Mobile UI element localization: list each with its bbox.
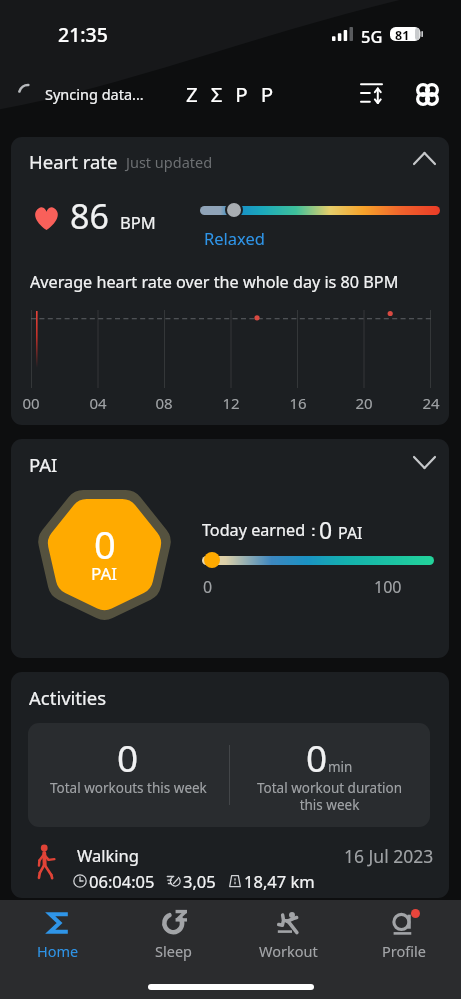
staticText: 0: [94, 518, 116, 570]
staticText: Total workouts this week: [50, 779, 207, 797]
staticText: Today earned：: [202, 519, 322, 541]
staticText: 04: [83, 393, 113, 413]
staticText: Relaxed: [204, 227, 265, 249]
staticText: Average heart rate over the whole day is…: [30, 271, 399, 293]
staticText: 0: [117, 732, 139, 782]
staticText: Sleep: [155, 941, 192, 961]
staticText: 20: [349, 393, 379, 413]
button[interactable]: Home: [0, 900, 116, 962]
staticText: PAI: [91, 562, 118, 585]
staticText: 81: [395, 27, 410, 41]
staticText: 18,47 km: [244, 870, 315, 892]
staticText: PAI: [338, 522, 363, 544]
staticText: Just updated: [126, 152, 213, 172]
staticText: 21:35: [58, 21, 108, 48]
staticText: 24: [416, 393, 446, 413]
staticText: 3,05: [183, 870, 216, 892]
staticText: 16 Jul 2023: [344, 844, 434, 868]
staticText: Z Σ P P: [186, 80, 277, 108]
button[interactable]: Expand: [407, 445, 441, 479]
button[interactable]: Profile: [346, 900, 461, 962]
button[interactable]: Workout: [231, 900, 346, 962]
staticText: 100: [374, 576, 402, 598]
staticText: Workout: [259, 941, 318, 961]
staticText: Walking: [77, 844, 139, 866]
button[interactable]: Sleep: [116, 900, 231, 962]
staticText: 08: [149, 393, 179, 413]
staticText: 16: [283, 393, 313, 413]
staticText: 0: [203, 576, 213, 598]
staticText: 0: [319, 514, 333, 545]
staticText: 5G: [361, 25, 383, 47]
staticText: Home: [37, 941, 79, 961]
staticText: 06:04:05: [89, 870, 155, 892]
button[interactable]: Sort: [349, 71, 393, 115]
staticText: Heart rate: [29, 149, 118, 174]
staticText: 12: [216, 393, 246, 413]
button[interactable]: Apps: [405, 72, 449, 116]
staticText: Syncing data...: [45, 84, 144, 104]
staticText: Activities: [29, 685, 107, 710]
button[interactable]: Collapse: [407, 141, 441, 175]
staticText: 86: [70, 193, 109, 239]
staticText: BPM: [120, 211, 156, 233]
staticText: PAI: [29, 452, 58, 477]
staticText: Profile: [382, 941, 426, 961]
staticText: Total workout duration this week: [229, 779, 430, 814]
staticText: 00: [16, 393, 46, 413]
staticText: 0: [306, 732, 328, 782]
button[interactable]: Walking: [11, 838, 449, 896]
staticText: min: [328, 758, 353, 776]
